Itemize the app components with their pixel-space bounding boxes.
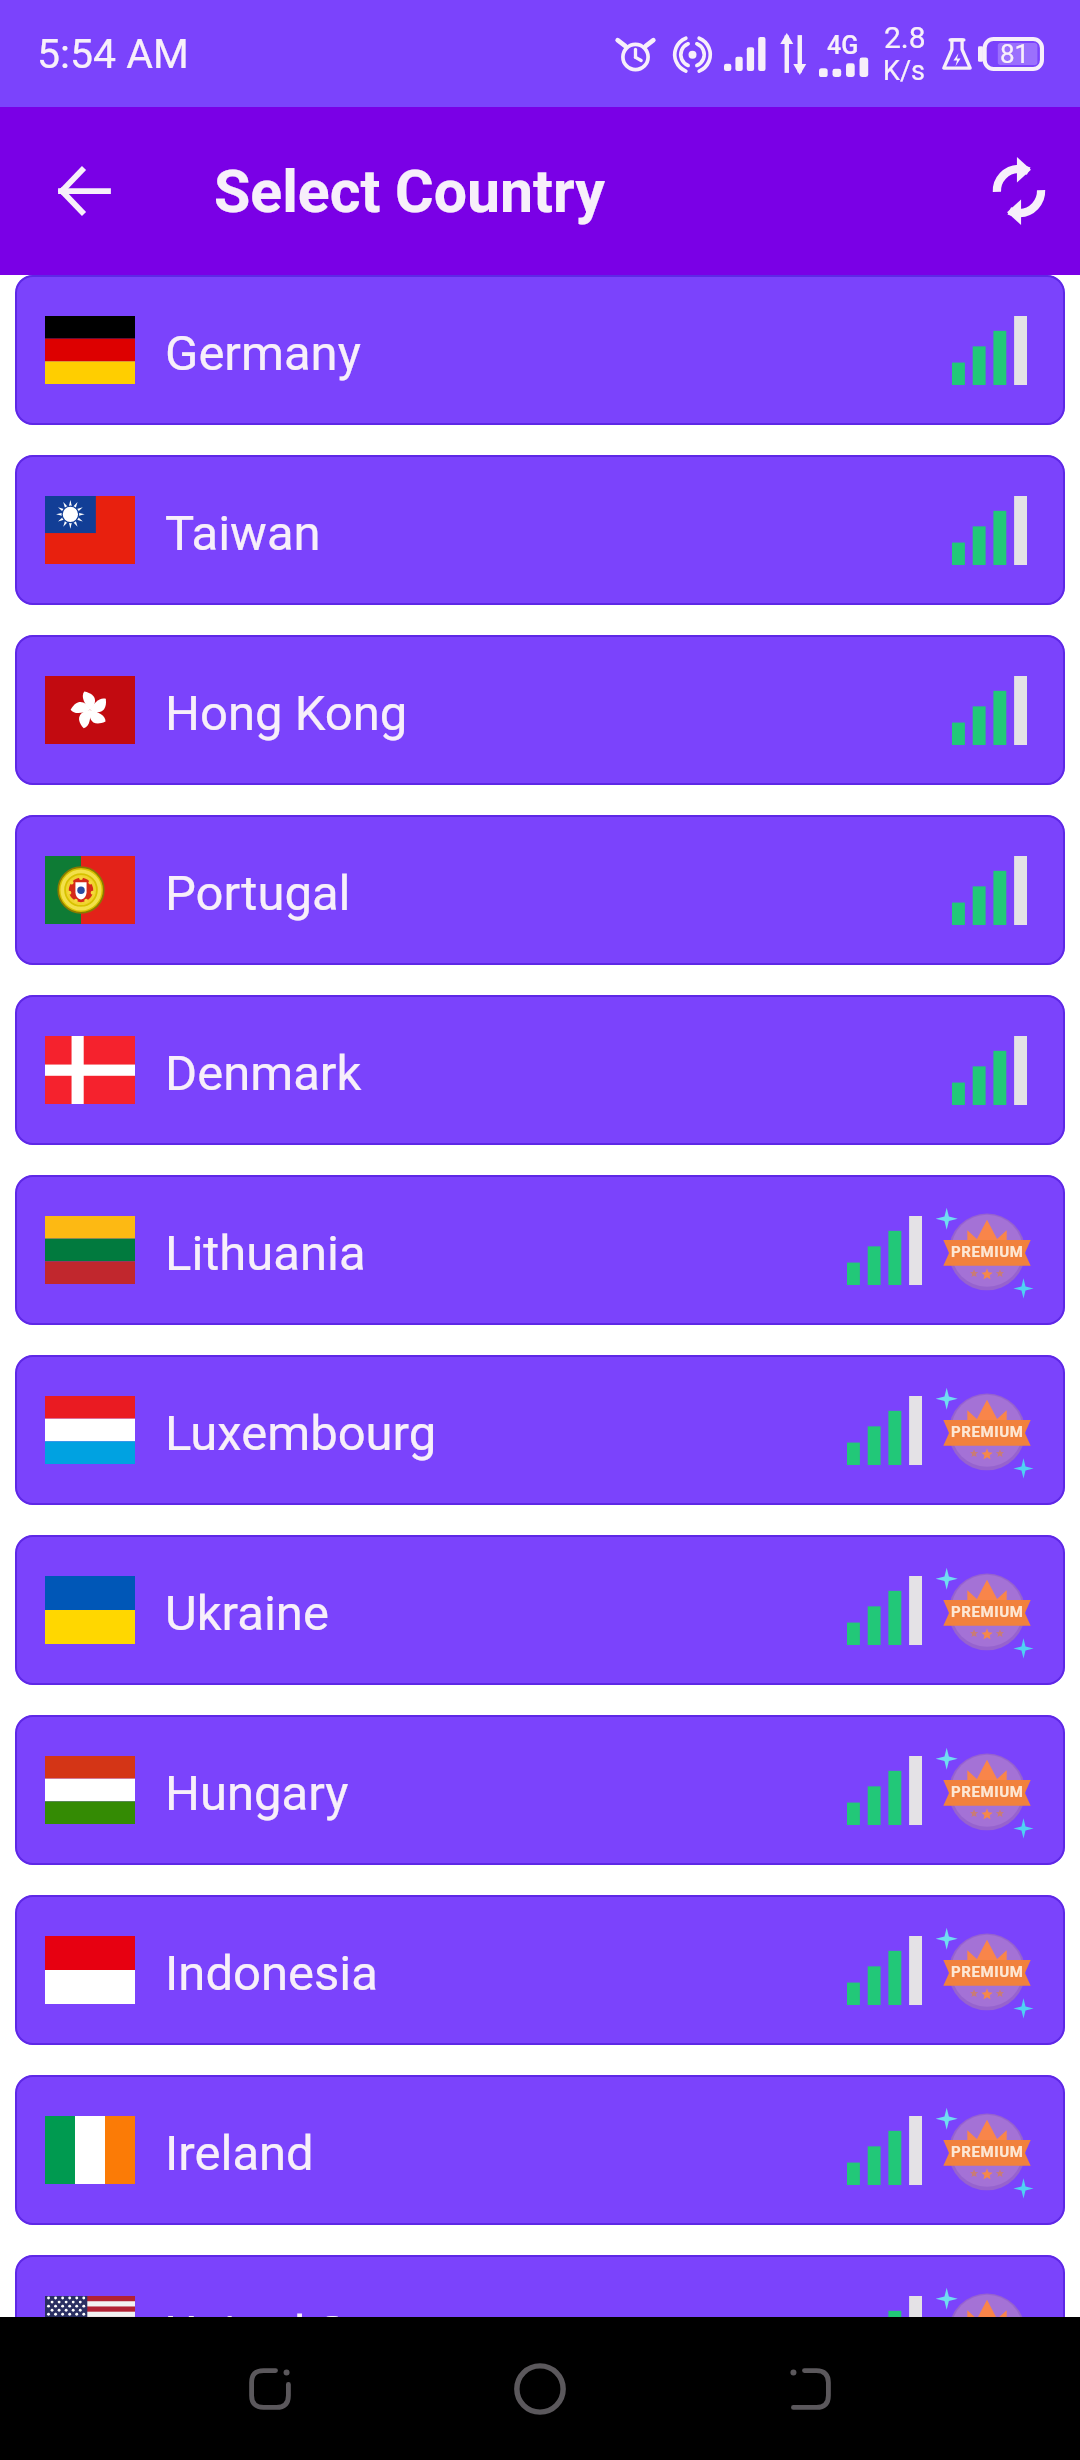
staticText: Indonesia	[165, 1945, 378, 2002]
staticText: Luxembourg	[165, 1405, 437, 1462]
staticText: K/s	[883, 55, 926, 87]
staticText: Hong Kong	[165, 685, 408, 742]
staticText: Lithuania	[165, 1225, 366, 1282]
staticText: PREMIUM	[951, 1963, 1024, 1981]
staticText: Select Country	[214, 157, 605, 226]
button[interactable]: Hungary	[15, 1715, 1065, 1865]
button[interactable]: Portugal	[15, 815, 1065, 965]
staticText: Taiwan	[165, 505, 321, 562]
staticText: 2.8	[884, 20, 926, 55]
staticText: 81	[1000, 39, 1030, 69]
staticText: 4G	[827, 31, 859, 60]
button[interactable]: Ireland	[15, 2075, 1065, 2225]
button[interactable]: Back	[36, 144, 130, 238]
button[interactable]: Ukraine	[15, 1535, 1065, 1685]
staticText: Ireland	[165, 2125, 314, 2182]
button[interactable]: Denmark	[15, 995, 1065, 1145]
staticText: 5:54 AM	[37, 30, 189, 78]
button[interactable]: Germany	[15, 275, 1065, 425]
button[interactable]: United States	[15, 2255, 1065, 2405]
button[interactable]: Recent apps	[195, 2317, 345, 2460]
staticText: Ukraine	[165, 1585, 329, 1642]
staticText: PREMIUM	[951, 2143, 1024, 2161]
button[interactable]: Home	[465, 2317, 615, 2460]
button[interactable]: Refresh	[972, 144, 1066, 238]
staticText: Hungary	[165, 1765, 349, 1822]
staticText: Portugal	[165, 865, 351, 922]
staticText: PREMIUM	[951, 1423, 1024, 1441]
button[interactable]: Luxembourg	[15, 1355, 1065, 1505]
staticText: PREMIUM	[951, 1603, 1024, 1621]
staticText: Denmark	[165, 1045, 362, 1102]
staticText: United States	[165, 2305, 457, 2362]
button[interactable]: Indonesia	[15, 1895, 1065, 2045]
staticText: PREMIUM	[951, 1243, 1024, 1261]
button[interactable]: Hong Kong	[15, 635, 1065, 785]
button[interactable]: Taiwan	[15, 455, 1065, 605]
button[interactable]: Lithuania	[15, 1175, 1065, 1325]
staticText: Germany	[165, 325, 361, 382]
button[interactable]: Back	[735, 2317, 885, 2460]
staticText: PREMIUM	[951, 1783, 1024, 1801]
